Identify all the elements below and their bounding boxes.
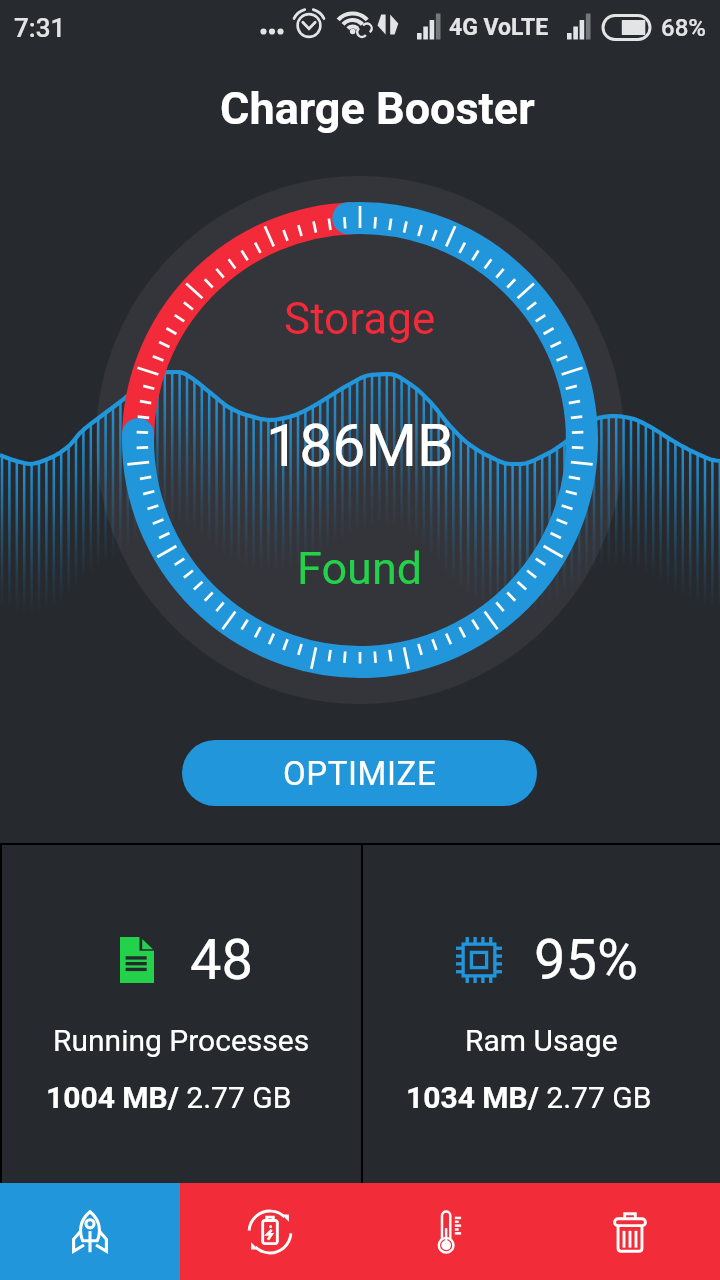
staticText: 68%	[661, 14, 706, 42]
button[interactable]: Charge	[180, 1183, 360, 1280]
staticText: Found	[297, 542, 423, 595]
staticText: 95%	[534, 927, 638, 993]
staticText: 186MB	[266, 411, 454, 480]
button[interactable]: OPTIMIZE	[182, 740, 537, 806]
button[interactable]: Cool down	[360, 1183, 540, 1280]
button[interactable]: 95%	[363, 845, 720, 1183]
staticText: OPTIMIZE	[283, 754, 437, 793]
staticText: Running Processes	[53, 1023, 310, 1058]
button[interactable]: Boost	[0, 1183, 180, 1280]
button[interactable]: Clean junk	[540, 1183, 720, 1280]
staticText: 7:31	[14, 13, 66, 43]
staticText: Charge Booster	[220, 82, 535, 135]
staticText: 48	[190, 927, 253, 993]
button[interactable]: 48	[2, 845, 361, 1183]
staticText: Storage	[284, 293, 436, 345]
staticText: Ram Usage	[465, 1023, 618, 1058]
staticText: 1034 MB/ 2.77 GB	[406, 1080, 652, 1115]
staticText: 4G VoLTE	[449, 14, 549, 41]
staticText: 1004 MB/ 2.77 GB	[46, 1080, 292, 1115]
